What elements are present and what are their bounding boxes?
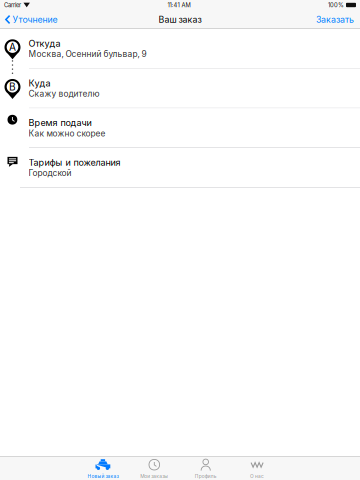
button[interactable]: Уточнение [0, 10, 61, 29]
button[interactable]: A [0, 29, 360, 68]
button[interactable]: Мои заказы [129, 456, 180, 480]
staticText: A [9, 41, 16, 53]
button[interactable]: Тарифы и пожелания [0, 148, 360, 187]
staticText: 11:41 AM [167, 1, 190, 9]
staticText: 100% [328, 1, 344, 9]
button[interactable]: B [0, 69, 360, 108]
staticText: Скажу водителю [28, 89, 99, 99]
staticText: О нас [250, 473, 264, 479]
staticText: Тарифы и пожелания [28, 157, 120, 168]
staticText: Куда [28, 78, 50, 89]
button[interactable]: Время подачи [0, 108, 360, 147]
button[interactable]: Новый заказ [77, 456, 129, 480]
staticText: Уточнение [12, 14, 57, 25]
staticText: Откуда [28, 38, 60, 49]
staticText: Москва, Осенний бульвар, 9 [28, 49, 146, 59]
staticText: Новый заказ [87, 473, 118, 479]
staticText: Мои заказы [140, 473, 168, 479]
button[interactable]: Профиль [180, 456, 231, 480]
staticText: Городской [28, 168, 71, 178]
staticText: Как можно скорее [28, 128, 105, 138]
staticText: Ваш заказ [158, 14, 201, 25]
staticText: Заказать [316, 14, 354, 25]
button[interactable]: Заказать [312, 10, 360, 29]
button[interactable]: О нас [231, 456, 283, 480]
staticText: Профиль [195, 473, 217, 479]
staticText: Время подачи [28, 117, 91, 128]
staticText: B [9, 81, 16, 93]
staticText: Carrier [4, 1, 21, 9]
